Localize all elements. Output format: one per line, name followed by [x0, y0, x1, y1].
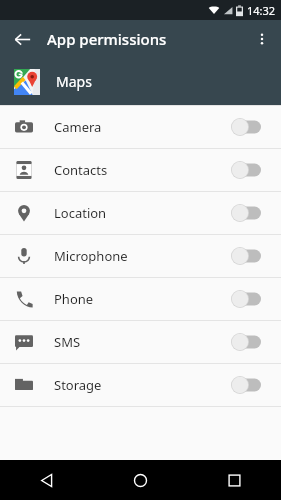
staticText: Location [54, 204, 107, 222]
button[interactable]: Storage [0, 364, 281, 406]
button[interactable]: Contacts [0, 149, 281, 191]
button[interactable]: Phone [0, 278, 281, 320]
button[interactable]: Back [0, 460, 93, 500]
button[interactable]: Toggle permission [231, 158, 265, 182]
staticText: 14:32 [247, 3, 276, 18]
staticText: SMS [54, 333, 81, 351]
staticText: Maps [56, 72, 92, 91]
button[interactable]: Maps [0, 58, 281, 105]
button[interactable]: Toggle permission [231, 115, 265, 139]
button[interactable]: SMS [0, 321, 281, 363]
staticText: Microphone [54, 247, 128, 265]
staticText: Storage [54, 376, 102, 394]
button[interactable]: Recent apps [187, 460, 281, 500]
button[interactable]: More options [247, 24, 277, 54]
button[interactable]: Toggle permission [231, 287, 265, 311]
staticText: Contacts [54, 161, 108, 179]
button[interactable]: Back [6, 23, 38, 55]
button[interactable]: Microphone [0, 235, 281, 277]
button[interactable]: Home [93, 460, 187, 500]
button[interactable]: Location [0, 192, 281, 234]
button[interactable]: Toggle permission [231, 330, 265, 354]
button[interactable]: Toggle permission [231, 244, 265, 268]
staticText: App permissions [47, 29, 167, 49]
staticText: Camera [54, 118, 102, 136]
button[interactable]: Camera [0, 106, 281, 148]
button[interactable]: Toggle permission [231, 373, 265, 397]
button[interactable]: Toggle permission [231, 201, 265, 225]
staticText: Phone [54, 290, 94, 308]
